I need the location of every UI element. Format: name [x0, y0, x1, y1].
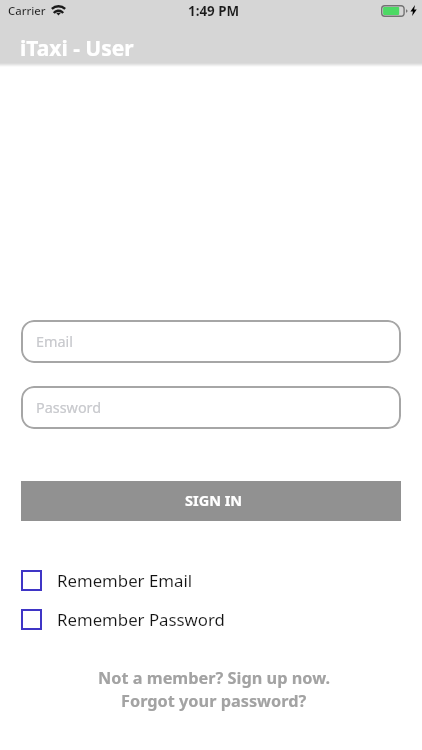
staticText: Not a member? Sign up now. — [98, 667, 331, 689]
button[interactable]: Forgot your password? — [3, 690, 422, 712]
other: Charging — [410, 5, 417, 16]
staticText: Password — [36, 398, 102, 418]
staticText: 1:49 PM — [188, 2, 240, 20]
staticText: Remember Password — [57, 608, 225, 631]
button[interactable]: Remember Email — [21, 569, 193, 592]
staticText: Forgot your password? — [121, 690, 307, 712]
staticText: Remember Email — [57, 569, 193, 592]
other: Wi-Fi signal — [51, 5, 66, 16]
button[interactable]: Email — [21, 320, 401, 363]
button[interactable]: Password — [21, 386, 401, 429]
staticText: Email — [36, 332, 73, 352]
staticText: iTaxi - User — [20, 34, 134, 63]
other: Battery charging — [381, 5, 409, 17]
button[interactable]: Not a member? Sign up now. — [3, 667, 422, 689]
staticText: SIGN IN — [185, 490, 243, 510]
button[interactable]: Remember Password — [21, 608, 225, 631]
button[interactable]: SIGN IN — [21, 481, 401, 521]
staticText: Carrier — [8, 3, 46, 18]
